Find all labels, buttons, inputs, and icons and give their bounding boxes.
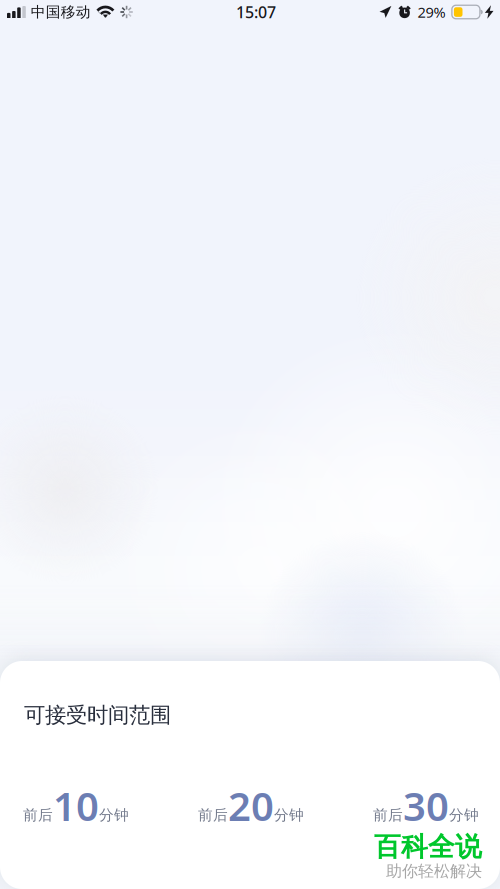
staticText: 可接受时间范围: [24, 702, 171, 728]
button[interactable]: 前后: [23, 779, 129, 832]
staticText: 15:07: [236, 1, 276, 23]
staticText: 分钟: [99, 806, 129, 824]
staticText: 中国移动: [31, 3, 91, 21]
button[interactable]: 前后: [198, 779, 304, 832]
staticText: 分钟: [274, 806, 304, 824]
staticText: 助你轻松解决: [386, 861, 482, 881]
staticText: 10: [53, 779, 99, 832]
staticText: 百科全说: [374, 831, 482, 863]
staticText: 前后: [198, 806, 228, 824]
staticText: 20: [228, 779, 274, 832]
staticText: 前后: [373, 806, 403, 824]
staticText: 分钟: [449, 806, 479, 824]
staticText: 30: [403, 779, 449, 832]
staticText: 前后: [23, 806, 53, 824]
button[interactable]: 前后: [373, 779, 479, 832]
staticText: 29%: [417, 2, 445, 22]
